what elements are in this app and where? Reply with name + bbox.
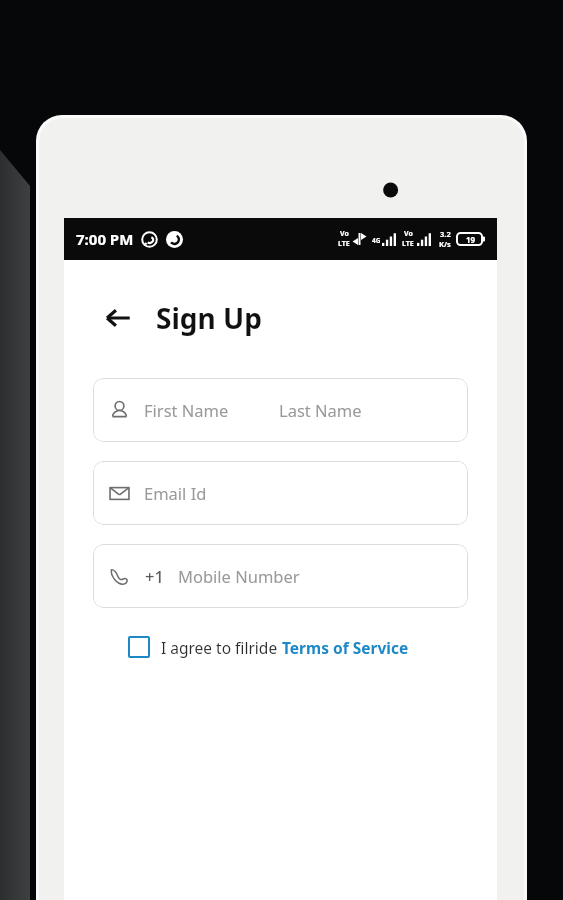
staticText: Last Name (279, 399, 362, 421)
staticText: 3.2 (440, 229, 451, 239)
staticText: First Name (144, 399, 229, 421)
button[interactable]: First Name (93, 378, 468, 442)
button[interactable]: I agree to filride (128, 636, 409, 658)
staticText: I agree to filride (161, 637, 282, 658)
button[interactable]: +1 (93, 544, 468, 608)
staticText: Email Id (144, 482, 207, 504)
staticText: Vo (404, 229, 413, 239)
button[interactable]: Back (96, 296, 140, 340)
staticText: +1 (145, 565, 164, 587)
staticText: LTE (402, 239, 414, 249)
staticText: K/s (439, 239, 451, 249)
button[interactable]: Email Id (93, 461, 468, 525)
staticText: Vo (340, 229, 349, 239)
staticText: 19 (466, 234, 476, 245)
staticText: 4G (372, 236, 381, 245)
staticText: Sign Up (156, 299, 262, 337)
staticText: Mobile Number (178, 565, 300, 587)
staticText: 7:00 PM (76, 229, 134, 249)
staticText: Terms of Service (282, 637, 409, 658)
staticText: LTE (338, 239, 350, 249)
